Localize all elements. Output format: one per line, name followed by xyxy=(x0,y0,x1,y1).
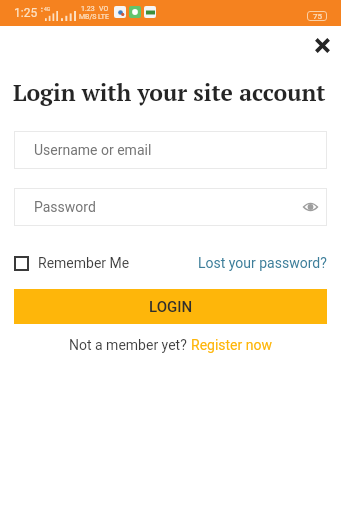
staticText: Remember Me xyxy=(38,255,130,271)
staticText: Login with your site account xyxy=(13,77,326,107)
staticText: 1:25 xyxy=(14,6,38,20)
staticText: LOGIN xyxy=(149,298,193,316)
button[interactable]: LOGIN xyxy=(14,289,327,324)
button[interactable]: Lost your password? xyxy=(198,255,327,271)
button[interactable]: Close xyxy=(307,30,338,61)
staticText: 75 xyxy=(313,12,322,21)
staticText: LTE xyxy=(98,13,109,21)
button[interactable]: Remember Me xyxy=(14,255,130,271)
staticText: Password xyxy=(34,199,96,215)
button[interactable]: Username or email xyxy=(14,131,327,169)
staticText: MB/S xyxy=(79,13,97,21)
button[interactable]: Register now xyxy=(191,337,272,353)
button[interactable]: Password xyxy=(14,188,327,226)
staticText: Not a member yet? xyxy=(69,337,191,353)
staticText: 1.23 xyxy=(81,5,95,13)
button[interactable]: Show password xyxy=(301,198,319,216)
staticText: VO xyxy=(99,5,109,13)
staticText: Username or email xyxy=(34,142,152,158)
staticText: 4G xyxy=(44,6,51,12)
